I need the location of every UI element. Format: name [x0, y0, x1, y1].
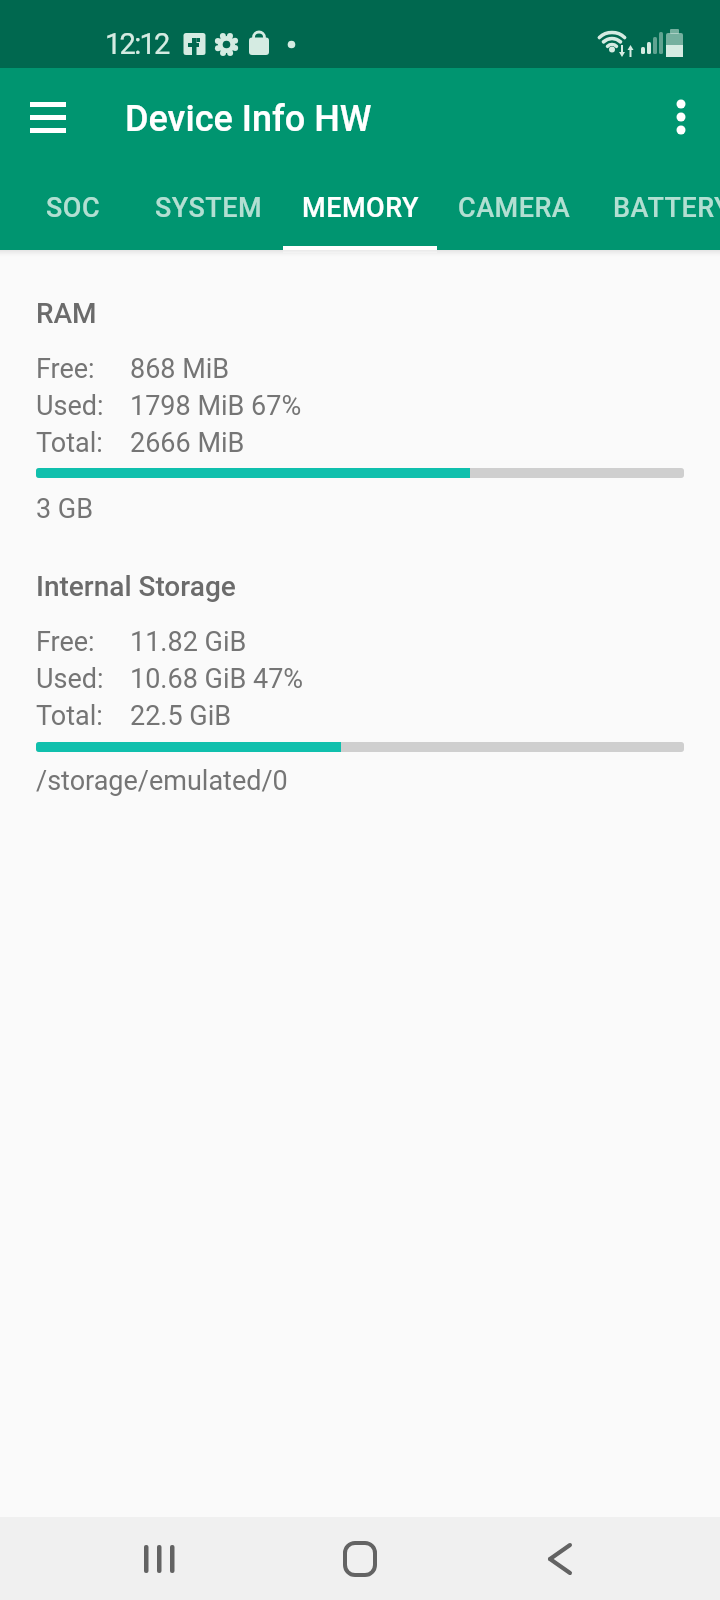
button[interactable]	[110, 1517, 210, 1600]
button[interactable]	[310, 1517, 410, 1600]
staticText: MEMORY	[302, 192, 419, 224]
staticText: Total:	[36, 427, 103, 459]
staticText: 1798 MiB 67%	[130, 390, 302, 422]
staticText: Free:	[36, 626, 95, 658]
button[interactable]	[16, 88, 80, 146]
button[interactable]: MEMORY	[282, 164, 438, 252]
staticText: SYSTEM	[155, 192, 263, 224]
button[interactable]: SYSTEM	[131, 164, 287, 252]
staticText: CAMERA	[458, 192, 571, 224]
button[interactable]	[510, 1517, 610, 1600]
staticText: /storage/emulated/0	[36, 765, 288, 797]
button[interactable]: BATTERY	[594, 164, 720, 252]
staticText: Total:	[36, 700, 103, 732]
button[interactable]: CAMERA	[436, 164, 592, 252]
button[interactable]: SOC	[0, 164, 151, 252]
staticText: RAM	[36, 297, 97, 330]
staticText: 868 MiB	[130, 353, 230, 385]
staticText: BATTERY	[613, 192, 720, 224]
button[interactable]	[654, 88, 710, 146]
staticText: 12:12	[105, 27, 169, 61]
staticText: 2666 MiB	[130, 427, 245, 459]
staticText: Used:	[36, 663, 104, 695]
staticText: 11.82 GiB	[130, 626, 247, 658]
staticText: Used:	[36, 390, 104, 422]
staticText: Device Info HW	[125, 98, 372, 140]
staticText: 3 GB	[36, 493, 94, 525]
staticText: 22.5 GiB	[130, 700, 232, 732]
staticText: 10.68 GiB 47%	[130, 663, 304, 695]
staticText: Internal Storage	[36, 570, 236, 603]
staticText: Free:	[36, 353, 95, 385]
staticText: SOC	[46, 192, 101, 224]
